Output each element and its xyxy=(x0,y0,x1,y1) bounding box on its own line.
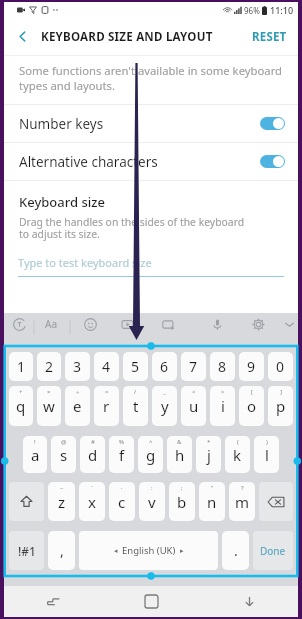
staticText: / xyxy=(134,388,137,396)
button[interactable]: Voice input xyxy=(206,313,228,335)
button[interactable]: i xyxy=(210,386,235,426)
staticText: ] xyxy=(280,388,282,396)
staticText: KEYBOARD SIZE AND LAYOUT xyxy=(41,29,213,45)
button[interactable]: k xyxy=(225,436,250,473)
button[interactable]: g xyxy=(138,436,163,473)
button[interactable]: p xyxy=(268,386,293,426)
staticText: Done xyxy=(260,544,286,558)
staticText: q xyxy=(16,396,26,416)
staticText: l xyxy=(265,445,269,465)
staticText: Some functions aren't available in some … xyxy=(19,63,283,93)
button[interactable]: Done xyxy=(253,531,293,570)
staticText: : xyxy=(151,484,153,492)
button[interactable]: 4 xyxy=(94,352,119,381)
button[interactable]: e xyxy=(65,386,90,426)
button[interactable]: RESET xyxy=(243,18,298,55)
button[interactable]: 8 xyxy=(210,352,235,381)
button[interactable]: Settings xyxy=(247,313,269,335)
staticText: ; xyxy=(181,484,183,492)
button[interactable]: n xyxy=(199,482,225,521)
staticText: 6 xyxy=(160,357,169,376)
button[interactable]: 7 xyxy=(181,352,206,381)
staticText: & xyxy=(177,438,182,446)
button[interactable]: Alternative characters toggle xyxy=(260,155,285,168)
button[interactable]: b xyxy=(169,482,195,521)
button[interactable]: Alternative characters xyxy=(4,143,298,180)
staticText: ^ xyxy=(149,438,153,446)
button[interactable]: x xyxy=(79,482,105,521)
button[interactable]: t xyxy=(123,386,148,426)
button[interactable]: GIF xyxy=(157,313,179,335)
button[interactable]: f xyxy=(109,436,134,473)
staticText: English (UK) xyxy=(122,544,176,557)
button[interactable]: Recent apps xyxy=(4,586,102,617)
staticText: m xyxy=(235,492,250,512)
button[interactable]: Emoji xyxy=(79,313,101,335)
button[interactable]: Backspace xyxy=(259,482,293,521)
button[interactable]: l xyxy=(254,436,279,473)
button[interactable]: r xyxy=(94,386,119,426)
button[interactable]: Stickers xyxy=(116,313,138,335)
staticText: i xyxy=(221,396,225,416)
staticText: Number keys xyxy=(19,115,104,133)
button[interactable]: u xyxy=(181,386,206,426)
staticText: 96% xyxy=(244,5,260,16)
staticText: k xyxy=(233,445,242,465)
staticText: c xyxy=(118,492,126,512)
button[interactable]: h xyxy=(167,436,192,473)
button[interactable]: 6 xyxy=(152,352,177,381)
staticText: * xyxy=(207,438,211,446)
button[interactable]: Text style xyxy=(40,313,62,335)
staticText: Alternative characters xyxy=(19,153,158,171)
button[interactable]: Translate xyxy=(8,313,30,335)
button[interactable]: a xyxy=(23,436,47,473)
button[interactable]: v xyxy=(139,482,165,521)
button[interactable]: 9 xyxy=(239,352,264,381)
button[interactable]: !#1 xyxy=(9,531,44,570)
button[interactable]: Number keys toggle xyxy=(260,117,285,130)
staticText: b xyxy=(177,492,187,512)
button[interactable]: 1 xyxy=(9,352,33,381)
staticText: Aa xyxy=(45,317,57,331)
staticText: < xyxy=(192,388,196,396)
button[interactable]: ◂ xyxy=(79,531,218,570)
button[interactable]: Navigate up xyxy=(4,18,41,55)
button[interactable]: y xyxy=(152,386,177,426)
staticText: @ xyxy=(61,438,67,446)
staticText: u xyxy=(189,396,199,416)
staticText: . xyxy=(234,541,238,560)
button[interactable]: 5 xyxy=(123,352,148,381)
button[interactable]: 0 xyxy=(268,352,293,381)
staticText: ` xyxy=(91,484,93,492)
button[interactable]: 2 xyxy=(37,352,61,381)
button[interactable]: m xyxy=(229,482,255,521)
staticText: r xyxy=(103,396,110,416)
button[interactable]: Number keys xyxy=(4,105,298,142)
button[interactable]: c xyxy=(109,482,135,521)
staticText: !#1 xyxy=(18,543,36,559)
button[interactable]: q xyxy=(9,386,33,426)
button[interactable]: 3 xyxy=(65,352,90,381)
button[interactable]: Back xyxy=(200,586,298,617)
button[interactable]: d xyxy=(80,436,105,473)
staticText: + xyxy=(19,388,23,396)
button[interactable]: Home xyxy=(102,586,200,617)
button[interactable]: w xyxy=(37,386,61,426)
staticText: 3 xyxy=(73,357,82,376)
staticText: f xyxy=(119,445,125,465)
staticText: = xyxy=(105,388,109,396)
button[interactable]: , xyxy=(48,531,75,570)
button[interactable]: j xyxy=(196,436,221,473)
staticText: × xyxy=(47,388,51,396)
button[interactable]: . xyxy=(222,531,249,570)
button[interactable]: o xyxy=(239,386,264,426)
staticText: a xyxy=(31,445,40,465)
staticText: ? xyxy=(241,484,244,492)
staticText: 1 xyxy=(17,357,26,376)
button[interactable]: s xyxy=(51,436,76,473)
button[interactable]: Shift xyxy=(9,482,44,521)
button[interactable]: z xyxy=(48,482,75,521)
staticText: o xyxy=(247,396,257,416)
staticText: 2 xyxy=(45,357,54,376)
button[interactable]: Collapse xyxy=(278,313,300,335)
